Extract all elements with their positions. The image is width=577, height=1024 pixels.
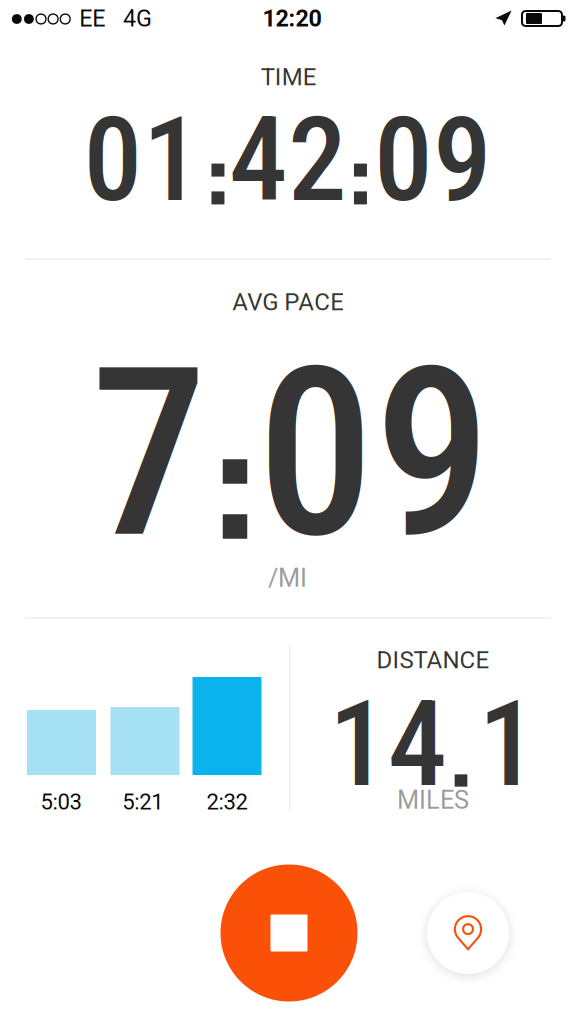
staticText: 42 xyxy=(229,91,347,229)
staticText: MILES xyxy=(397,785,469,815)
button[interactable]: Stop xyxy=(220,864,357,1001)
staticText: 4G xyxy=(123,5,152,32)
staticText: AVG PACE xyxy=(232,288,344,316)
staticText: 5:21 xyxy=(122,789,163,815)
staticText: /MI xyxy=(268,563,307,593)
staticText: 09 xyxy=(374,91,492,229)
staticText: 09 xyxy=(257,317,491,591)
staticText: 1 xyxy=(478,675,537,814)
staticText: TIME xyxy=(261,63,317,91)
staticText: 14 xyxy=(329,675,447,814)
staticText: 01 xyxy=(83,91,201,229)
staticText: 7 xyxy=(91,317,208,591)
staticText: 2:32 xyxy=(206,789,247,815)
staticText: 12:20 xyxy=(263,5,322,32)
staticText: 5:03 xyxy=(40,789,81,815)
button[interactable]: Map xyxy=(427,892,509,974)
staticText: DISTANCE xyxy=(376,646,489,674)
staticText: EE xyxy=(79,5,105,32)
